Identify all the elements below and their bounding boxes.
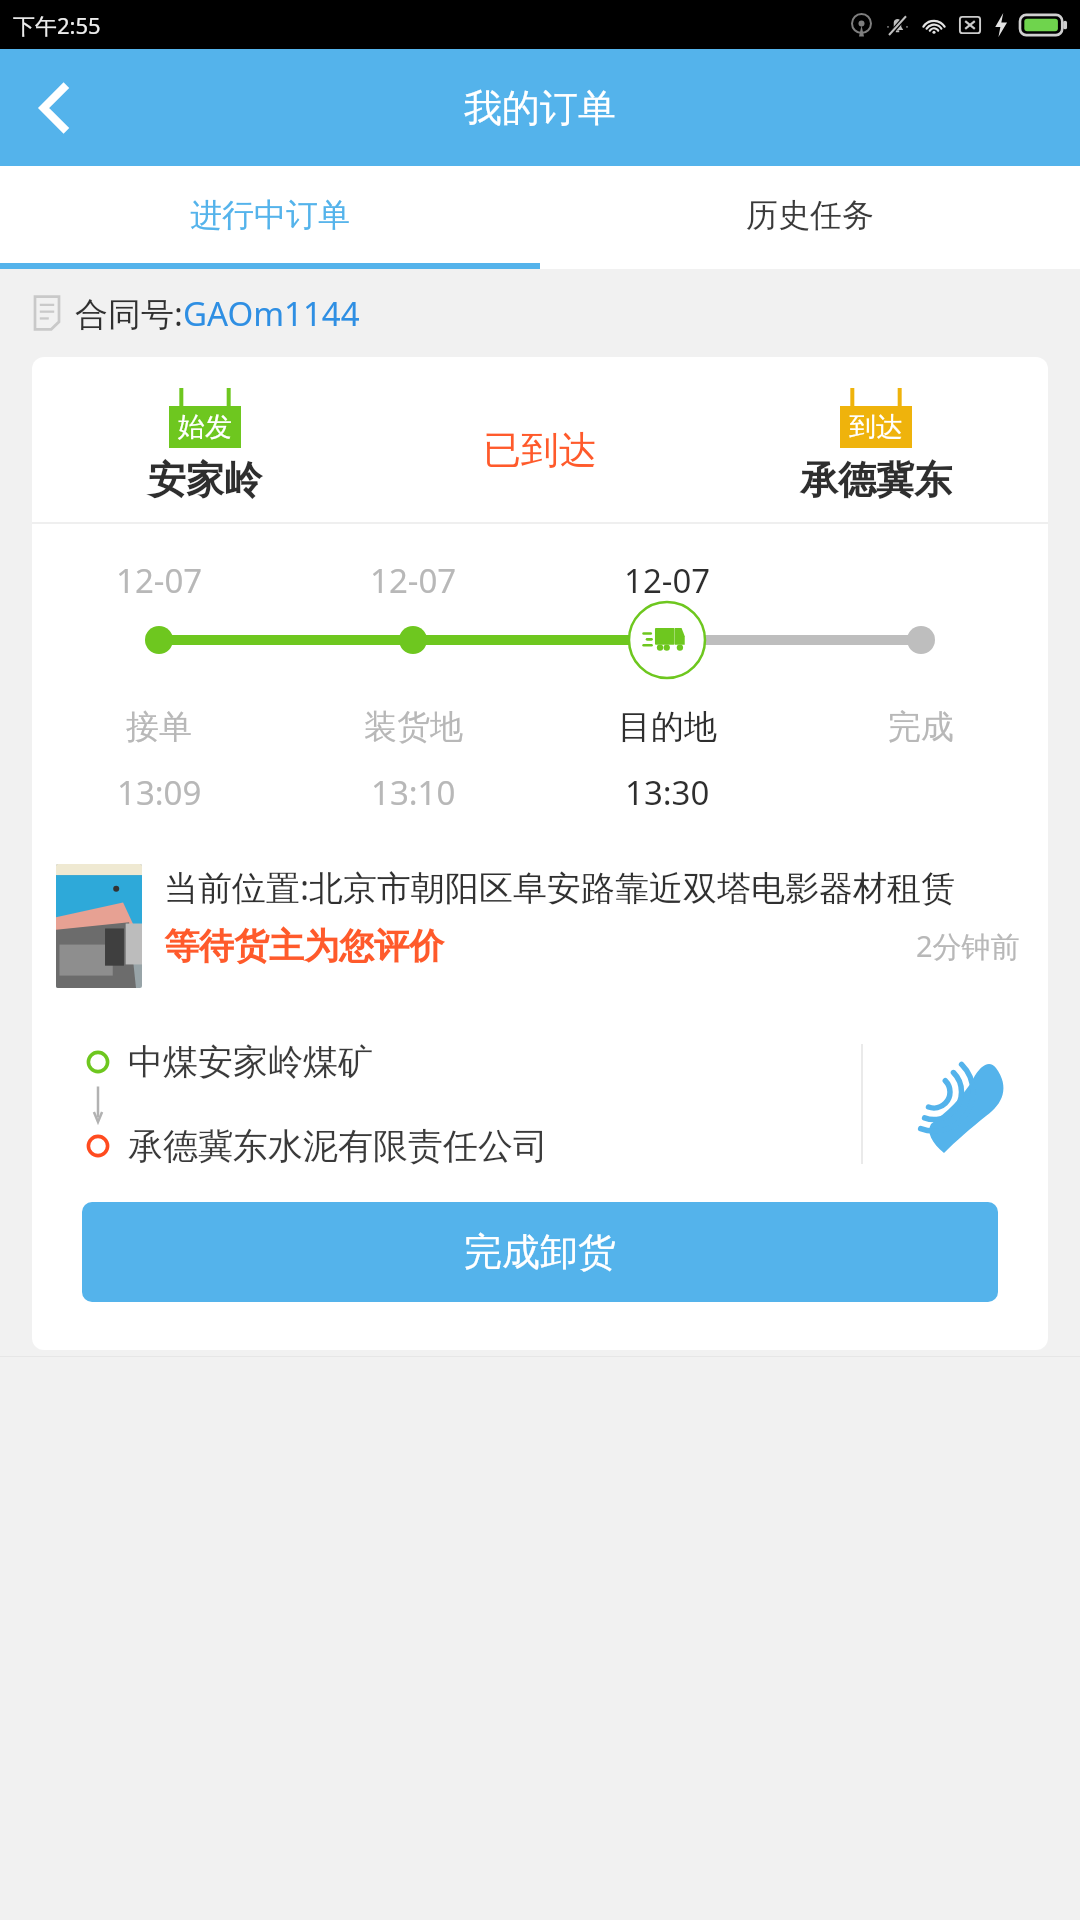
staticText: 承德冀东水泥有限责任公司	[128, 1124, 548, 1168]
staticText: 13:10	[371, 770, 456, 815]
staticText: 接单	[126, 706, 192, 748]
button[interactable]: 始发	[32, 357, 1048, 1350]
staticText: GAOm1144	[183, 291, 360, 336]
staticText: 等待货主为您评价	[164, 924, 444, 968]
staticText: 下午2:55	[13, 10, 101, 40]
staticText: 12-07	[624, 558, 711, 603]
staticText: 进行中订单	[190, 195, 350, 235]
staticText: 合同号:	[75, 291, 183, 336]
button[interactable]: 完成卸货	[82, 1202, 998, 1302]
staticText: 装货地	[364, 706, 463, 748]
staticText: 已到达	[483, 426, 597, 474]
staticText: 承德冀东	[800, 456, 952, 504]
button[interactable]: Call	[863, 1024, 1048, 1184]
staticText: 当前位置:北京市朝阳区阜安路靠近双塔电影器材租赁	[164, 864, 956, 910]
staticText: 完成	[888, 706, 954, 748]
staticText: 12-07	[370, 558, 457, 603]
staticText: 我的订单	[464, 84, 616, 132]
staticText: 13:09	[117, 770, 202, 815]
button[interactable]: 进行中订单	[0, 166, 540, 263]
staticText: 12-07	[116, 558, 203, 603]
button[interactable]: 历史任务	[540, 166, 1080, 263]
button[interactable]: Back	[0, 49, 110, 166]
staticText: 完成卸货	[464, 1228, 616, 1276]
staticText: 始发	[178, 410, 232, 444]
staticText: 13:30	[625, 770, 710, 815]
staticText: 历史任务	[746, 195, 874, 235]
staticText: 到达	[849, 410, 903, 444]
staticText: 2分钟前	[916, 926, 1020, 966]
staticText: 目的地	[618, 706, 717, 748]
staticText: 中煤安家岭煤矿	[128, 1040, 373, 1084]
staticText: 安家岭	[148, 456, 262, 504]
